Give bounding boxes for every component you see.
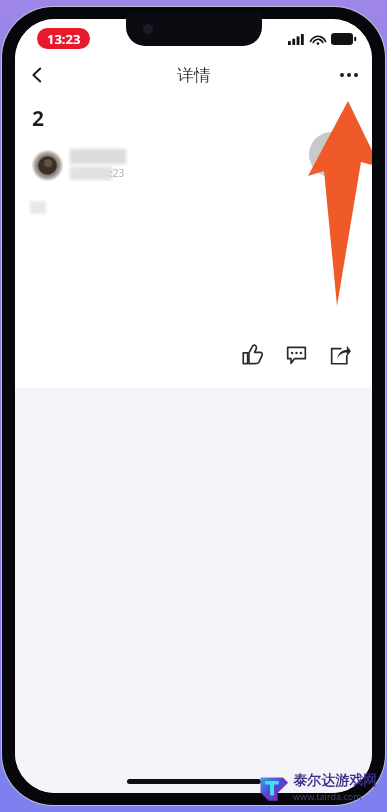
button[interactable]: Comment (274, 332, 318, 376)
staticText: 泰尔达游戏网 (293, 772, 377, 790)
staticText: 2 (32, 104, 45, 133)
button[interactable]: Back (15, 54, 59, 96)
button[interactable]: More options (326, 54, 372, 96)
staticText: www.tairda.com (293, 790, 362, 802)
staticText: :23 (110, 166, 125, 180)
button[interactable]: Like (230, 332, 274, 376)
button[interactable]: Share (318, 332, 362, 376)
staticText: 13:23 (47, 30, 81, 48)
staticText: 详情 (177, 65, 211, 86)
